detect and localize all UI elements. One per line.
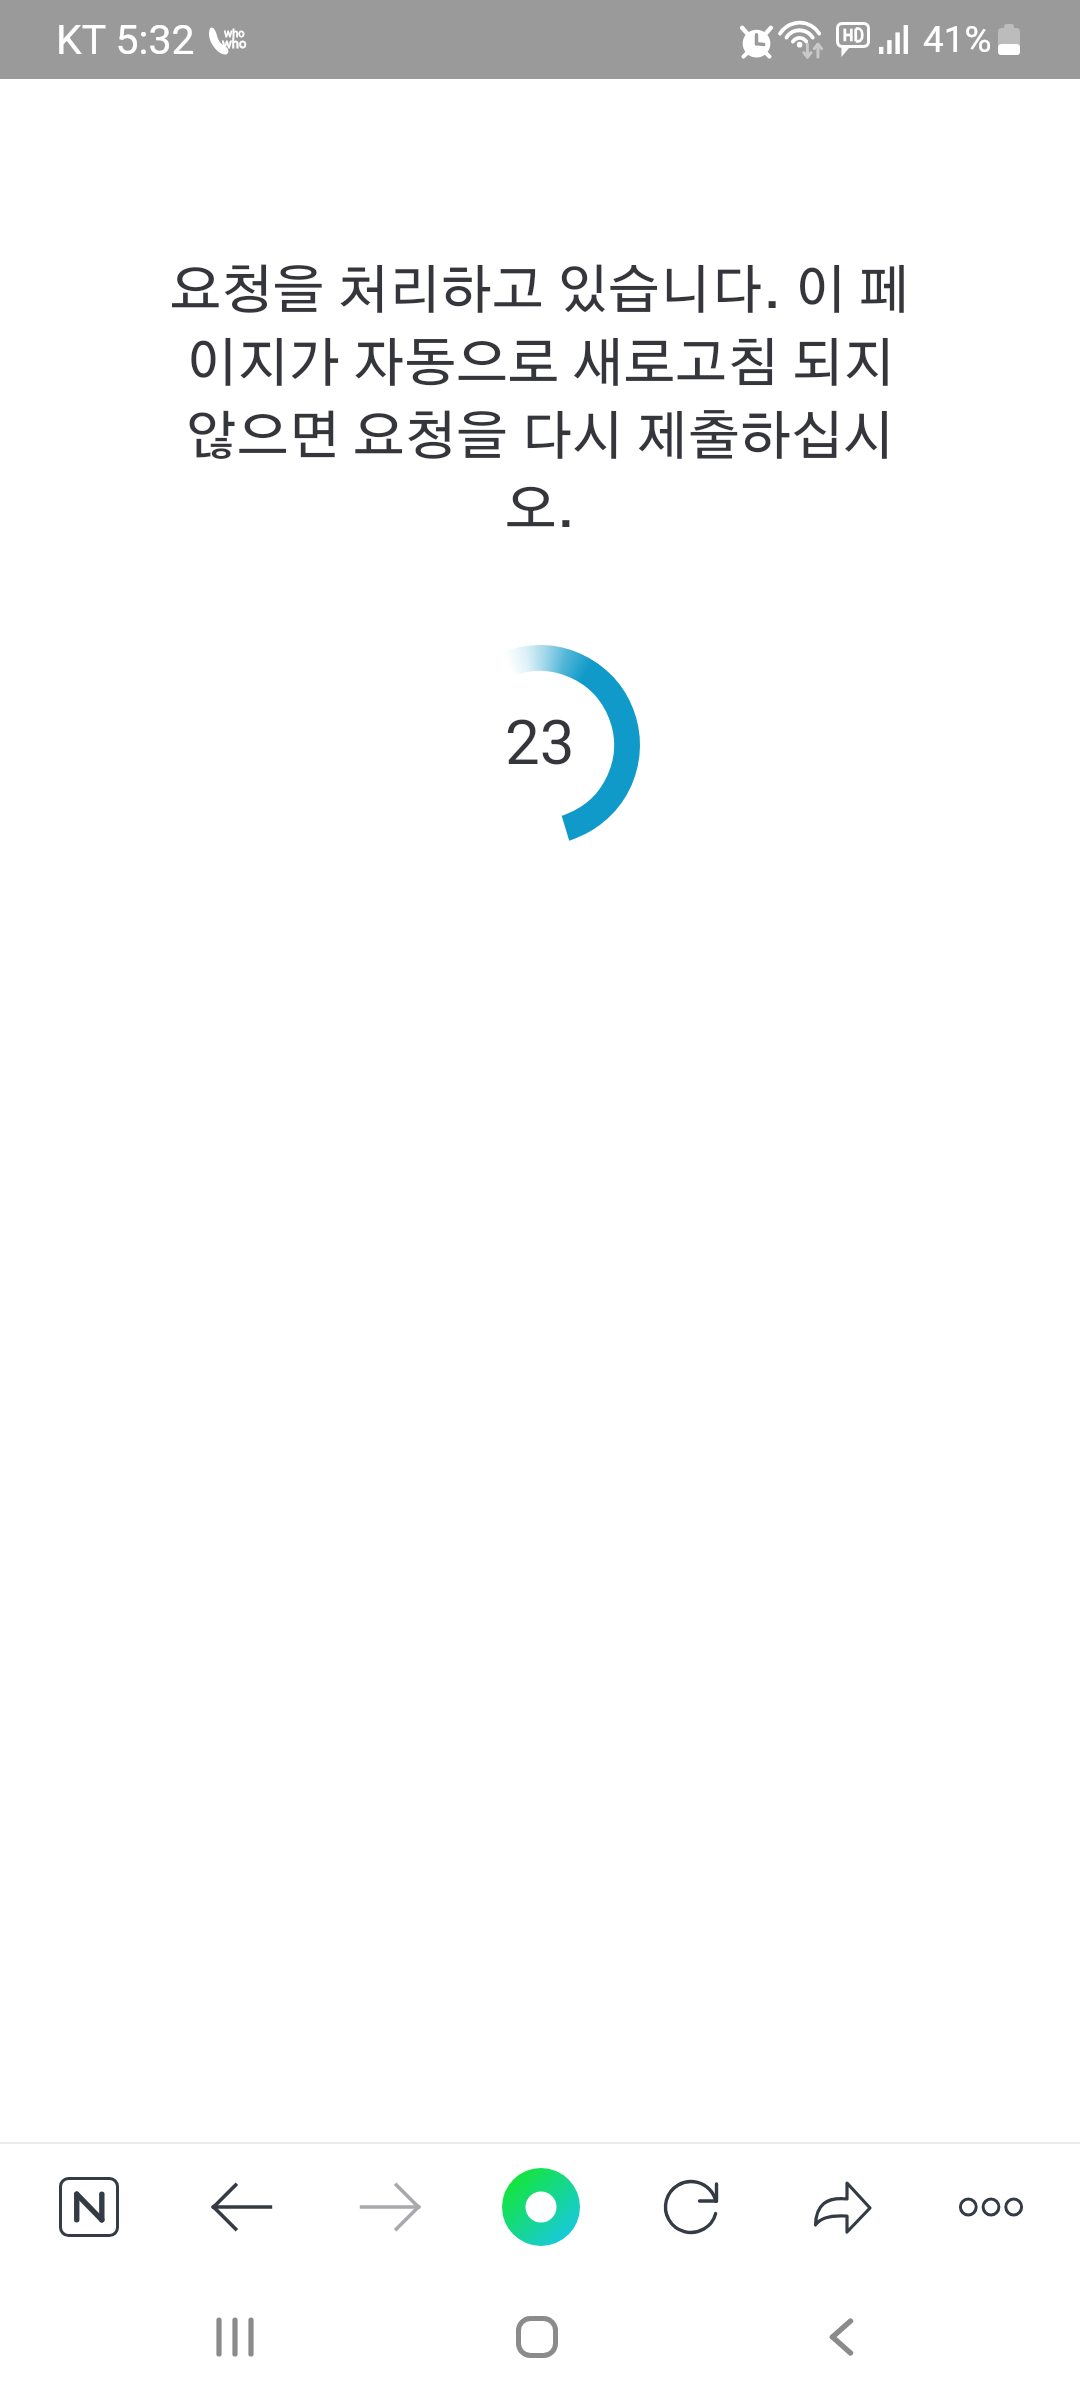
button[interactable]: Reload [618, 2144, 768, 2274]
staticText: 41% [923, 18, 992, 61]
button[interactable]: Home [477, 2274, 597, 2400]
staticText: who [224, 27, 245, 40]
button[interactable]: Back [779, 2274, 899, 2400]
staticText: who [222, 36, 247, 51]
staticText: 23 [505, 706, 575, 779]
button[interactable]: Back [165, 2144, 318, 2274]
button[interactable]: Home [468, 2144, 618, 2274]
staticText: KT 5:32 [56, 16, 195, 64]
button[interactable]: Recents [175, 2274, 295, 2400]
button[interactable]: More [920, 2144, 1080, 2274]
staticText: 요청을 처리하고 있습니다. 이 페 이지가 자동으로 새로고침 되지 않으면 … [70, 266, 1010, 538]
button[interactable]: Share [768, 2144, 920, 2274]
button[interactable]: Forward [318, 2144, 468, 2274]
button[interactable]: Naver home [0, 2144, 165, 2274]
